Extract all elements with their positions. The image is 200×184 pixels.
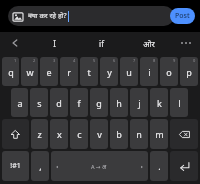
button[interactable]: s (30, 88, 48, 117)
staticText: j (138, 97, 141, 109)
staticText: z (37, 128, 42, 140)
staticText: t (87, 66, 91, 78)
staticText: 4 (73, 58, 76, 63)
staticText: v (97, 128, 102, 140)
staticText: I (53, 38, 56, 49)
staticText: Post (175, 11, 190, 21)
staticText: p (186, 66, 192, 78)
staticText: 6 (113, 58, 116, 63)
button[interactable]: d (50, 88, 68, 117)
button[interactable]: Add image (12, 11, 23, 22)
staticText: 1 (14, 58, 17, 63)
button[interactable]: t (80, 57, 98, 86)
staticText: o (166, 66, 172, 78)
button[interactable]: More options (172, 32, 200, 54)
button[interactable]: x (50, 119, 68, 149)
staticText: 0 (193, 58, 196, 63)
button[interactable]: j (130, 88, 148, 117)
staticText: f (77, 97, 81, 109)
button[interactable]: Previous (0, 32, 30, 54)
button[interactable]: r (60, 57, 78, 86)
button[interactable]: l (170, 88, 188, 117)
button[interactable]: n (130, 119, 148, 149)
staticText: d (56, 97, 62, 109)
staticText: !#1 (10, 161, 21, 171)
button[interactable]: Add image (8, 6, 174, 26)
button[interactable]: y (100, 57, 118, 86)
button[interactable]: b (110, 119, 128, 149)
staticText: y (107, 66, 112, 78)
button[interactable]: q (2, 57, 19, 86)
button[interactable]: if (78, 32, 125, 54)
button[interactable]: !#1 (2, 151, 29, 181)
staticText: h (116, 97, 122, 109)
button[interactable]: g (90, 88, 108, 117)
staticText: a (17, 97, 23, 109)
staticText: 3 (53, 58, 56, 63)
button[interactable]: Post (170, 8, 195, 24)
staticText: q (8, 66, 14, 78)
button[interactable]: z (31, 119, 48, 149)
button[interactable]: m (150, 119, 168, 149)
button[interactable]: w (21, 57, 38, 86)
button[interactable]: k (150, 88, 168, 117)
staticText: m (155, 128, 164, 140)
staticText: A → अ (91, 163, 107, 170)
button[interactable]: o (160, 57, 178, 86)
button[interactable]: Enter (170, 151, 198, 181)
button[interactable]: h (110, 88, 128, 117)
staticText: . (158, 160, 161, 172)
staticText: 5 (93, 58, 96, 63)
button[interactable]: c (70, 119, 88, 149)
button[interactable]: Space, switch language (51, 151, 148, 181)
staticText: l (178, 97, 181, 109)
button[interactable]: Backspace (170, 119, 198, 149)
staticText: ओर (143, 38, 155, 49)
staticText: , (39, 160, 42, 172)
staticText: u (126, 66, 132, 78)
staticText: i (148, 66, 151, 78)
button[interactable]: u (120, 57, 138, 86)
button[interactable]: p (180, 57, 198, 86)
staticText: 8 (153, 58, 156, 63)
staticText: if (99, 38, 104, 49)
staticText: b (116, 128, 122, 140)
button[interactable]: , (31, 151, 49, 181)
button[interactable]: a (11, 88, 28, 117)
staticText: x (57, 128, 62, 140)
staticText: n (136, 128, 142, 140)
staticText: c (77, 128, 82, 140)
button[interactable]: ओर (125, 32, 172, 54)
staticText: r (67, 66, 71, 78)
staticText: 7 (133, 58, 136, 63)
button[interactable]: e (40, 57, 58, 86)
staticText: e (46, 66, 52, 78)
staticText: g (96, 97, 102, 109)
staticText: 9 (173, 58, 176, 63)
button[interactable]: i (140, 57, 158, 86)
staticText: क्या कर रहे हो? (28, 11, 67, 21)
button[interactable]: Shift (2, 119, 29, 149)
button[interactable]: I (30, 32, 78, 54)
staticText: s (37, 97, 42, 109)
staticText: w (26, 66, 34, 78)
button[interactable]: v (90, 119, 108, 149)
staticText: k (157, 97, 162, 109)
button[interactable]: . (150, 151, 168, 181)
staticText: 2 (33, 58, 36, 63)
button[interactable]: f (70, 88, 88, 117)
